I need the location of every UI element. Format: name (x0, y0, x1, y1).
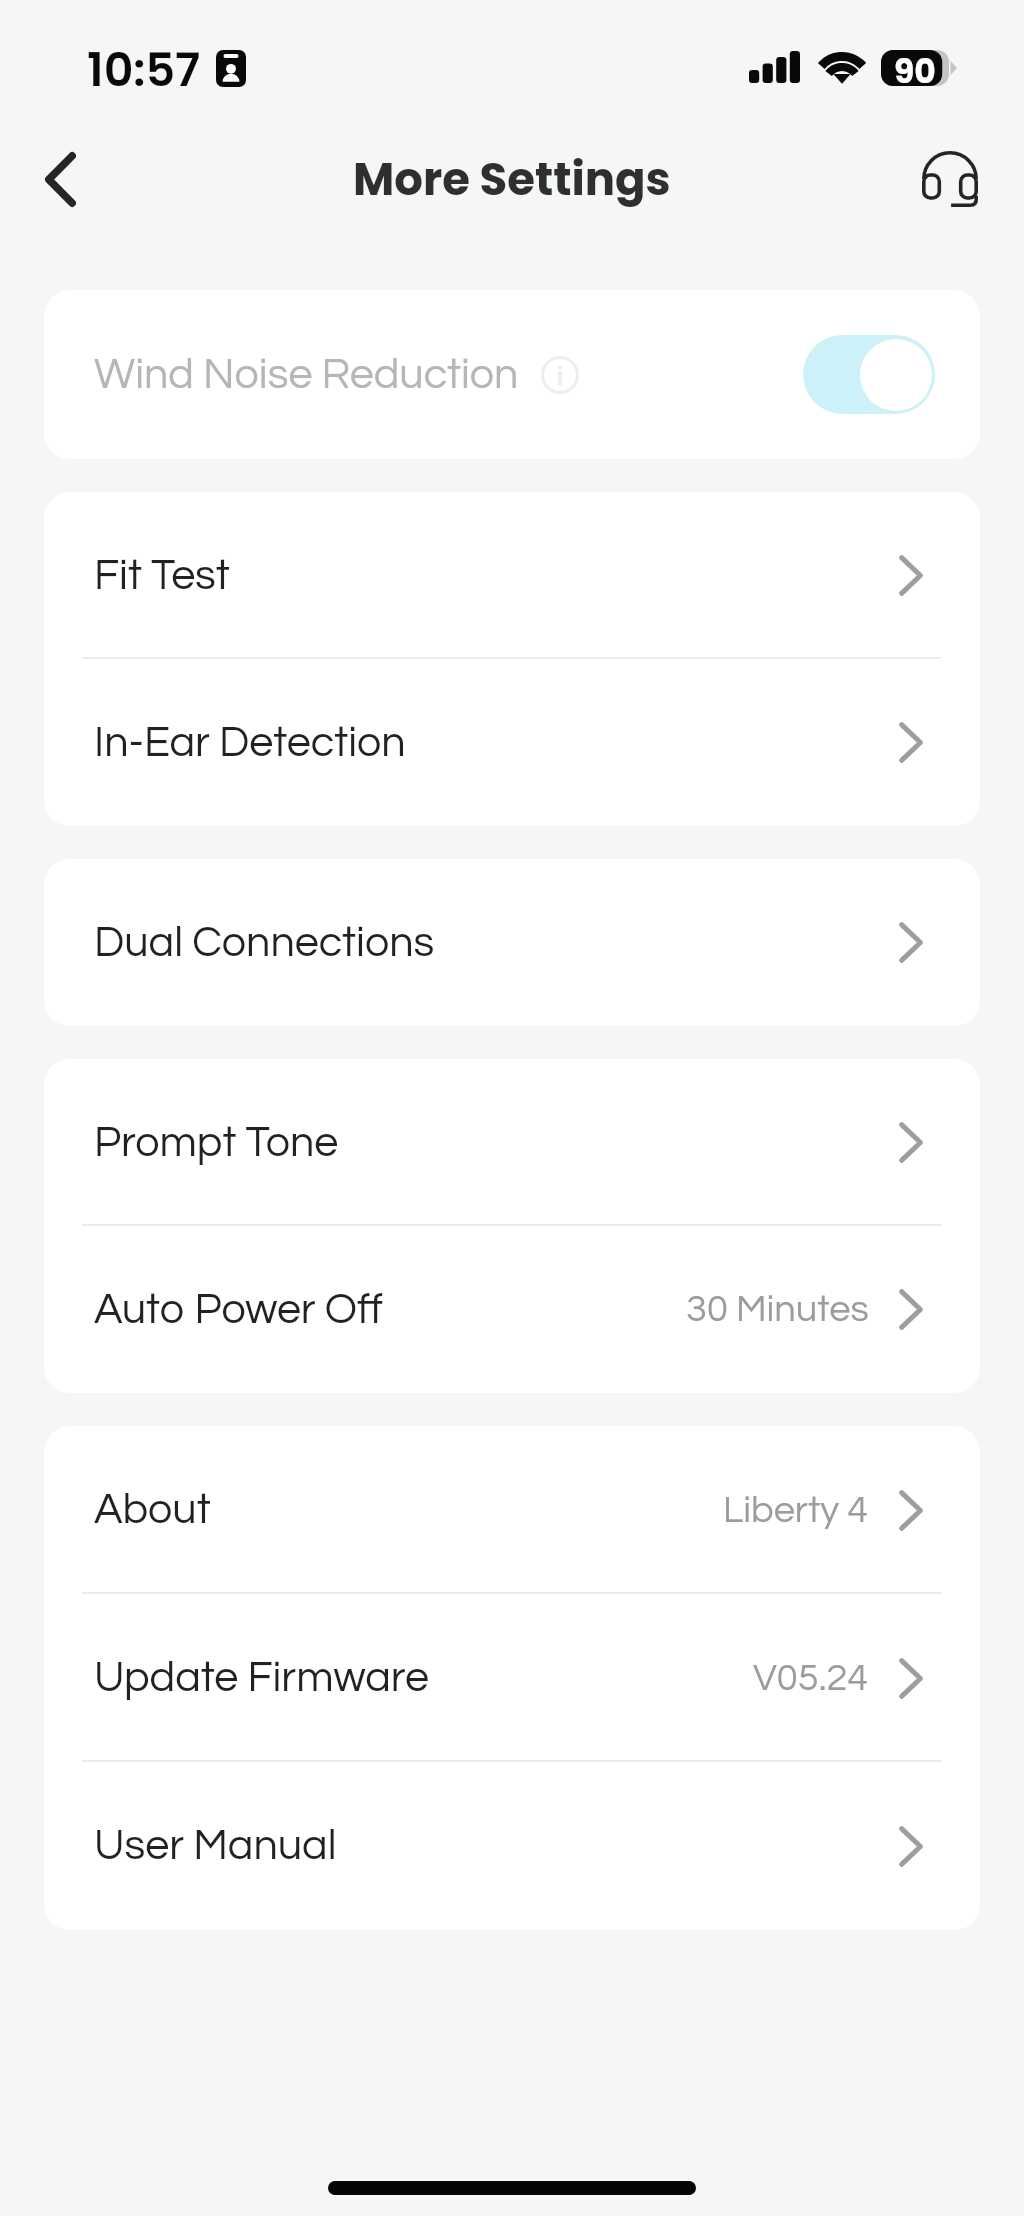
staticText: In-Ear Detection (94, 721, 406, 765)
button[interactable]: In-Ear Detection (44, 659, 980, 826)
staticText: Auto Power Off (94, 1288, 384, 1332)
button[interactable]: User Manual (44, 1762, 980, 1930)
button[interactable]: Wind Noise Reduction toggle, on (803, 335, 935, 414)
staticText: Fit Test (94, 554, 230, 598)
button[interactable]: Fit Test (44, 492, 980, 659)
staticText: User Manual (94, 1824, 337, 1868)
staticText: About (94, 1488, 211, 1532)
staticText: 30 Minutes (686, 1290, 869, 1329)
button[interactable]: Prompt Tone (44, 1059, 980, 1226)
staticText: Liberty 4 (723, 1491, 869, 1530)
staticText: V05.24 (753, 1659, 869, 1698)
button[interactable]: Customer support (876, 124, 1024, 234)
staticText: 90 (894, 48, 936, 94)
button[interactable]: Back (0, 124, 120, 234)
button[interactable]: Auto Power Off (44, 1226, 980, 1393)
staticText: Update Firmware (94, 1656, 429, 1700)
staticText: Dual Connections (94, 921, 435, 965)
button[interactable]: Dual Connections (44, 859, 980, 1026)
button[interactable]: About (44, 1426, 980, 1594)
staticText: 10:57 (87, 38, 201, 102)
staticText: More Settings (353, 148, 671, 211)
button[interactable]: Wind Noise Reduction (44, 290, 980, 459)
staticText: Prompt Tone (94, 1121, 339, 1165)
staticText: Wind Noise Reduction (94, 353, 519, 397)
button[interactable]: Update Firmware (44, 1594, 980, 1762)
